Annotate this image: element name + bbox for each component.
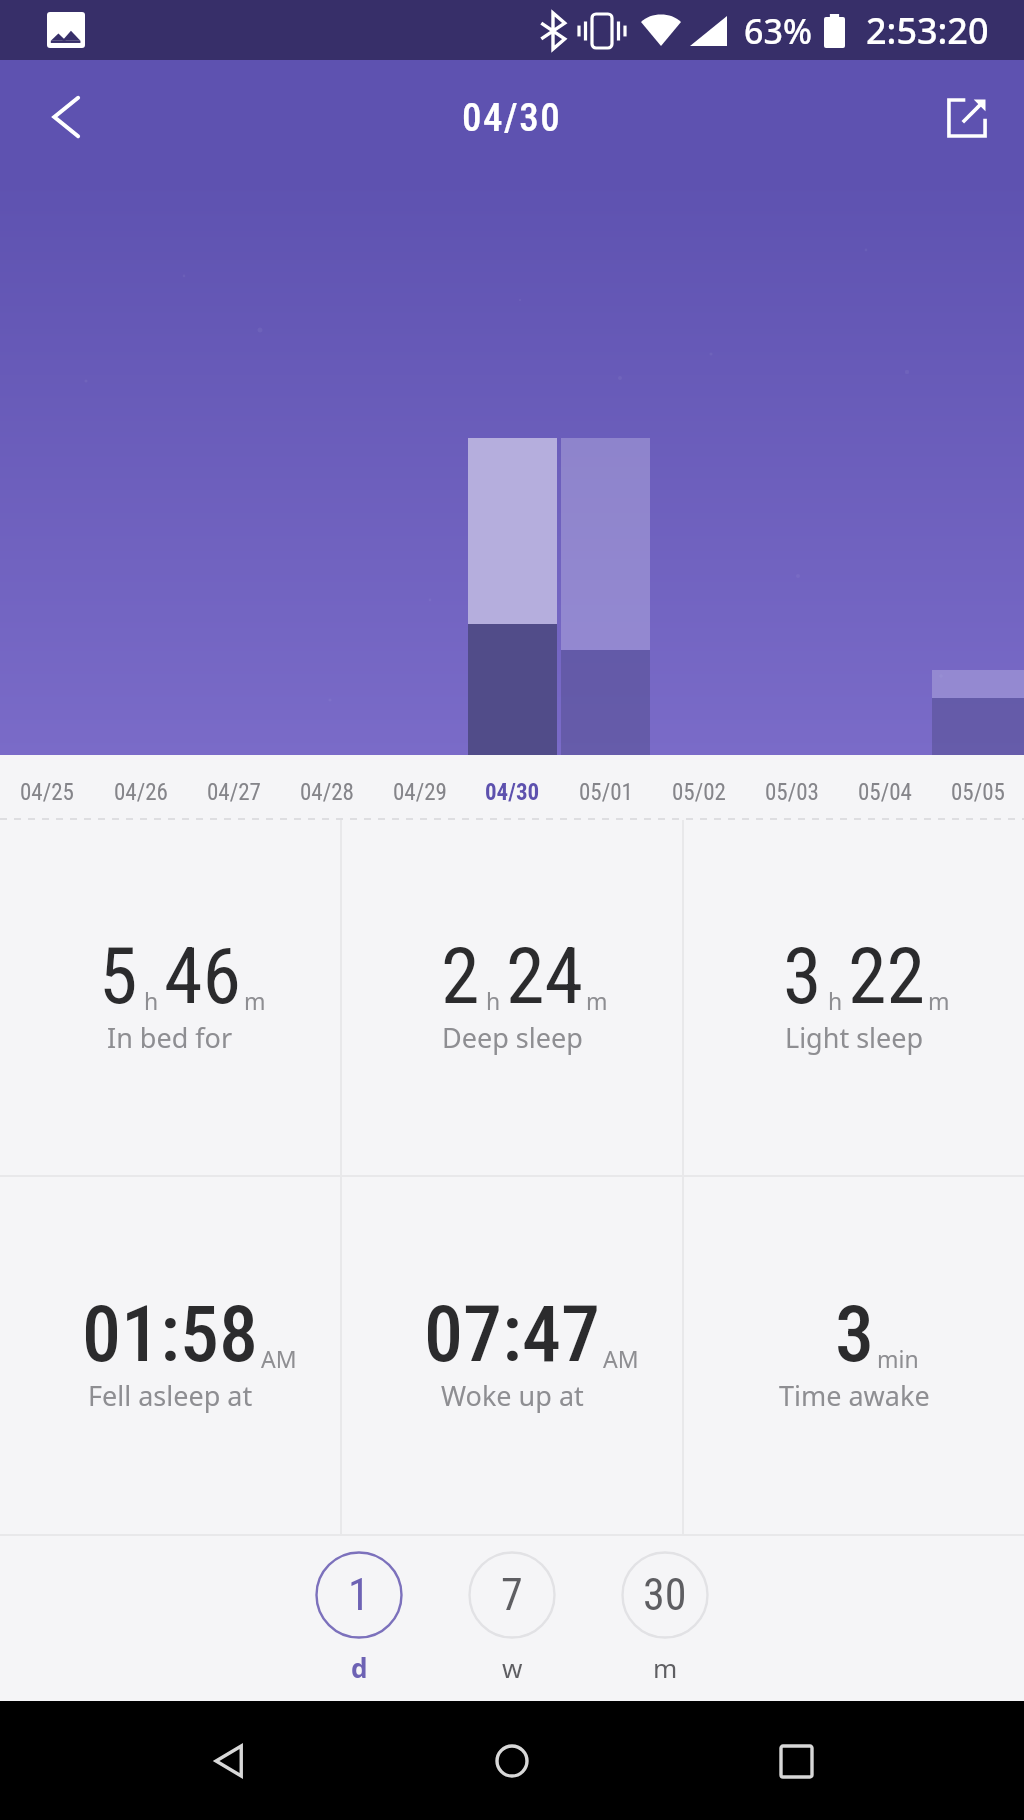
- staticText: min: [877, 1343, 919, 1374]
- button[interactable]: 01:58: [0, 1177, 340, 1534]
- staticText: m: [586, 985, 608, 1016]
- button[interactable]: 04/27: [187, 755, 280, 820]
- button[interactable]: 04/30: [466, 755, 559, 820]
- staticText: AM: [261, 1343, 297, 1374]
- button[interactable]: Back: [23, 77, 109, 163]
- staticText: 46: [164, 931, 242, 1022]
- staticText: m: [928, 985, 950, 1016]
- staticText: 05/01: [579, 779, 633, 806]
- button[interactable]: 04/25: [0, 755, 94, 820]
- staticText: 63%: [744, 8, 812, 54]
- staticText: 24: [506, 931, 584, 1022]
- button[interactable]: 05/01: [559, 755, 652, 820]
- staticText: 30: [643, 1569, 687, 1621]
- button[interactable]: 05/05: [931, 755, 1024, 820]
- button[interactable]: 1: [311, 1551, 407, 1685]
- staticText: 7: [501, 1569, 523, 1621]
- staticText: 5: [99, 931, 138, 1022]
- staticText: Time awake: [779, 1377, 930, 1414]
- button[interactable]: Back: [174, 1706, 284, 1816]
- staticText: 1: [348, 1569, 370, 1621]
- button[interactable]: 05/03: [745, 755, 838, 820]
- staticText: In bed for: [107, 1019, 233, 1056]
- button[interactable]: 07:47: [342, 1177, 682, 1534]
- staticText: 04/27: [207, 779, 261, 806]
- staticText: 07:47: [424, 1289, 600, 1380]
- button[interactable]: 30: [617, 1551, 713, 1685]
- staticText: h: [144, 985, 159, 1016]
- button[interactable]: 05/04: [838, 755, 931, 820]
- staticText: 04/25: [20, 779, 74, 806]
- staticText: 04/28: [300, 779, 354, 806]
- button[interactable]: 04/26: [94, 755, 187, 820]
- button[interactable]: 2: [342, 820, 682, 1175]
- staticText: d: [351, 1650, 368, 1685]
- staticText: AM: [603, 1343, 639, 1374]
- staticText: 3: [835, 1289, 874, 1380]
- staticText: 2: [441, 931, 480, 1022]
- staticText: 3: [783, 931, 822, 1022]
- staticText: h: [828, 985, 843, 1016]
- button[interactable]: Recents: [741, 1706, 851, 1816]
- staticText: w: [502, 1650, 523, 1685]
- staticText: 04/30: [485, 779, 540, 806]
- staticText: 05/04: [858, 779, 912, 806]
- button[interactable]: 05/02: [652, 755, 745, 820]
- button[interactable]: 7: [464, 1551, 560, 1685]
- staticText: 04/26: [114, 779, 168, 806]
- staticText: m: [653, 1650, 678, 1685]
- staticText: 04/30: [462, 95, 562, 141]
- staticText: 01:58: [82, 1289, 258, 1380]
- staticText: 2:53:20: [866, 6, 989, 55]
- button[interactable]: Share: [924, 77, 1010, 163]
- button[interactable]: 04/28: [280, 755, 373, 820]
- staticText: 05/02: [672, 779, 726, 806]
- staticText: m: [244, 985, 266, 1016]
- staticText: 04/29: [393, 779, 447, 806]
- button[interactable]: 3: [684, 1177, 1024, 1534]
- staticText: Woke up at: [441, 1377, 584, 1414]
- button[interactable]: 5: [0, 820, 340, 1175]
- staticText: Light sleep: [785, 1019, 924, 1056]
- staticText: Fell asleep at: [88, 1377, 253, 1414]
- button[interactable]: 3: [684, 820, 1024, 1175]
- staticText: Deep sleep: [442, 1019, 583, 1056]
- button[interactable]: 04/29: [373, 755, 466, 820]
- staticText: 05/03: [765, 779, 819, 806]
- button[interactable]: Home: [457, 1706, 567, 1816]
- staticText: 22: [848, 931, 926, 1022]
- staticText: 05/05: [951, 779, 1005, 806]
- staticText: h: [486, 985, 501, 1016]
